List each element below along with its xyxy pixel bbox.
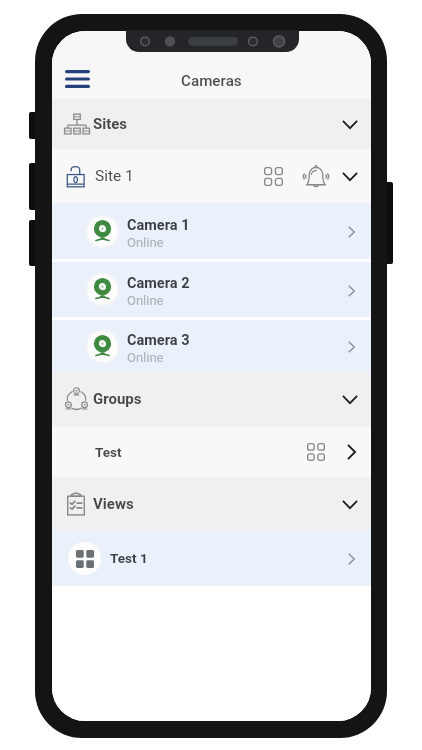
staticText: Groups [93, 390, 142, 408]
staticText: Camera 1 [127, 217, 190, 234]
button[interactable]: Open navigation menu [58, 60, 96, 98]
staticText: Views [93, 495, 134, 513]
staticText: Cameras [181, 72, 242, 90]
button[interactable]: Expand section [338, 387, 362, 411]
button[interactable]: Views [52, 477, 371, 530]
staticText: Test [95, 444, 122, 460]
staticText: Site 1 [95, 167, 134, 185]
button[interactable]: Open Test [340, 441, 362, 463]
button[interactable]: Site 1 [52, 149, 371, 203]
button[interactable]: Camera 2 [52, 262, 371, 317]
button[interactable]: Test [52, 426, 371, 477]
button[interactable]: Sites [52, 98, 371, 149]
button[interactable]: Grid view [302, 438, 330, 466]
button[interactable]: Notifications [301, 161, 331, 191]
staticText: Online [127, 293, 164, 308]
staticText: Sites [93, 115, 128, 133]
button[interactable]: Groups [52, 372, 371, 426]
staticText: Test 1 [110, 550, 148, 566]
staticText: Camera 3 [127, 332, 190, 349]
button[interactable]: Camera 1 [52, 203, 371, 259]
staticText: Online [127, 350, 164, 365]
button[interactable]: Camera 3 [52, 320, 371, 372]
button[interactable]: Expand section [338, 112, 362, 136]
staticText: Camera 2 [127, 275, 190, 292]
button[interactable]: Test 1 [52, 530, 371, 586]
staticText: Online [127, 235, 164, 250]
button[interactable]: Expand section [338, 164, 362, 188]
button[interactable]: Expand section [338, 492, 362, 516]
button[interactable]: Grid view [259, 162, 287, 190]
